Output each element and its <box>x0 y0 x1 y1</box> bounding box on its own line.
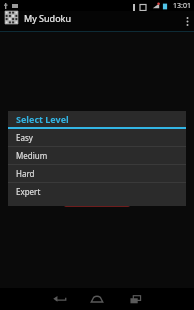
staticText: Hard <box>16 168 35 179</box>
button[interactable]: More options <box>180 11 194 31</box>
button[interactable]: Easy <box>8 129 186 146</box>
button[interactable]: Back <box>41 288 77 310</box>
button[interactable]: Home <box>79 288 115 310</box>
staticText: My Sudoku <box>24 12 71 24</box>
staticText: 13:01 <box>173 1 191 11</box>
staticText: Medium <box>16 150 48 161</box>
staticText: Easy <box>16 132 33 143</box>
button[interactable]: Medium <box>8 147 186 164</box>
button[interactable]: Hard <box>8 165 186 182</box>
staticText: Select Level <box>16 113 69 125</box>
staticText: Expert <box>16 186 41 197</box>
button[interactable] <box>64 194 130 207</box>
button[interactable]: Expert <box>8 183 186 200</box>
button[interactable]: Recent apps <box>117 288 153 310</box>
